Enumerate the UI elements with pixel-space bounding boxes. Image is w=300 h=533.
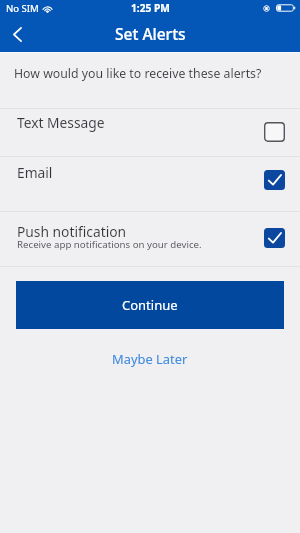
staticText: Email — [17, 163, 53, 182]
staticText: No SIM — [6, 2, 39, 15]
staticText: Text Message — [17, 113, 105, 132]
staticText: 1:25 PM — [131, 1, 170, 15]
staticText: Push notification — [17, 222, 127, 241]
button[interactable]: Maybe Later — [102, 345, 198, 373]
staticText: Receive app notifications on your device… — [17, 238, 202, 251]
button[interactable]: Push notification — [0, 212, 300, 266]
button[interactable]: Continue — [16, 281, 284, 329]
staticText: Continue — [122, 296, 178, 314]
button[interactable]: Back — [0, 17, 34, 51]
staticText: How would you like to receive these aler… — [14, 65, 262, 82]
button[interactable]: Email — [0, 157, 300, 211]
staticText: Maybe Later — [112, 350, 188, 368]
staticText: Set Alerts — [115, 23, 186, 44]
button[interactable]: Text Message — [0, 109, 300, 156]
